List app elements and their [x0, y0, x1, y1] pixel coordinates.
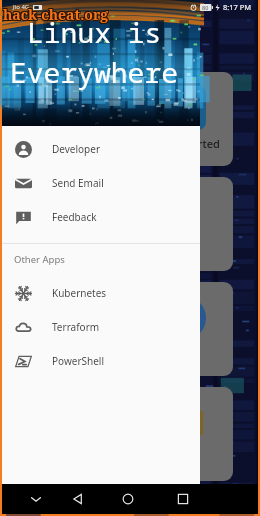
button[interactable]: Processes — [28, 387, 233, 481]
button[interactable]: Feedback — [2, 200, 200, 234]
button[interactable]: Recents — [172, 488, 194, 510]
staticText: Linux is — [27, 13, 162, 51]
staticText: hack-cheat.org — [2, 5, 108, 24]
staticText: hack-cheat.org — [2, 4, 108, 23]
button[interactable]: Hide keyboard — [25, 488, 47, 510]
staticText: Getting Started — [139, 136, 220, 151]
staticText: 80 — [202, 4, 209, 11]
staticText: hack-cheat.org — [3, 5, 109, 24]
button[interactable]: Developer — [2, 132, 200, 166]
staticText: Developer — [52, 142, 101, 156]
staticText: hack-cheat.org — [4, 6, 110, 25]
staticText: Everywhere — [10, 53, 179, 91]
staticText: hack-cheat.org — [4, 4, 110, 23]
staticText: hack-cheat.org — [3, 6, 109, 25]
staticText: hack-cheat.org — [3, 4, 109, 23]
button[interactable]: File System — [28, 282, 233, 376]
staticText: 8:17 PM — [223, 2, 252, 12]
button[interactable]: Getting Started — [28, 72, 233, 166]
button[interactable]: Kubernetes — [2, 276, 200, 310]
staticText: PowerShell — [52, 354, 104, 368]
button[interactable]: Commands — [28, 177, 233, 271]
staticText: Terraform — [52, 320, 100, 334]
staticText: hack-cheat.org — [2, 6, 108, 25]
staticText: Kubernetes — [52, 286, 107, 300]
button[interactable]: Back — [67, 488, 89, 510]
button[interactable]: Send Email — [2, 166, 200, 200]
staticText: Other Apps — [14, 253, 65, 266]
staticText: Commands — [139, 241, 199, 256]
staticText: Jio 4G — [13, 3, 30, 11]
button[interactable]: Home — [117, 488, 139, 510]
button[interactable]: Terraform — [2, 310, 200, 344]
staticText: Feedback — [52, 210, 97, 224]
button[interactable]: PowerShell — [2, 344, 200, 378]
staticText: hack-cheat.org — [4, 5, 110, 24]
staticText: Send Email — [52, 176, 104, 190]
